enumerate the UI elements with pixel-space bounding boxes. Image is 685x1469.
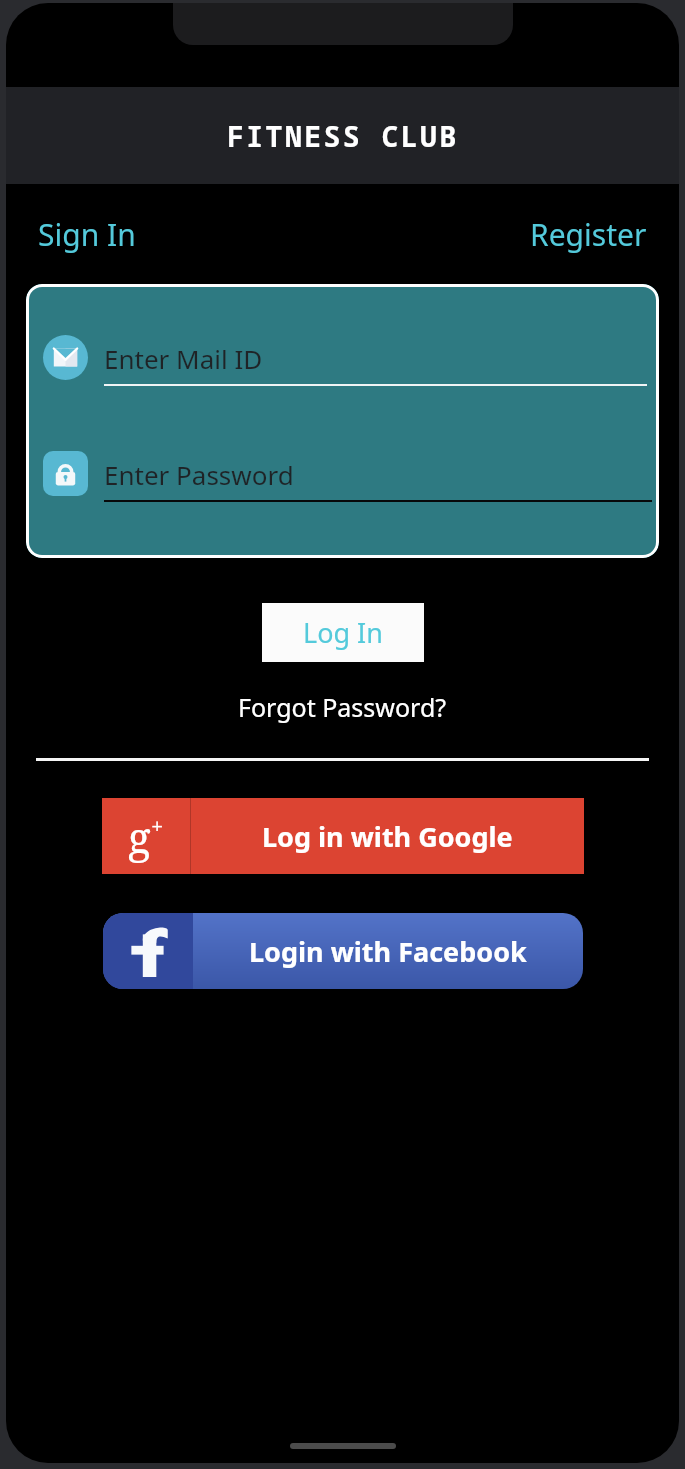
button[interactable]: Login with Facebook xyxy=(103,913,583,989)
button[interactable]: Register xyxy=(526,208,651,261)
staticText: Register xyxy=(530,214,647,255)
staticText: Log In xyxy=(303,614,383,651)
button[interactable]: g xyxy=(102,798,584,874)
staticText: Enter Mail ID xyxy=(104,341,263,376)
staticText: + xyxy=(151,810,164,840)
staticText: FITNESS CLUB xyxy=(227,117,459,155)
staticText: Login with Facebook xyxy=(249,933,527,970)
button[interactable]: Log In xyxy=(262,603,424,662)
staticText: Log in with Google xyxy=(262,818,513,855)
staticText: Sign In xyxy=(38,214,136,255)
other: Password xyxy=(43,451,88,496)
staticText: Forgot Password? xyxy=(238,690,447,724)
button[interactable]: Forgot Password? xyxy=(228,682,457,732)
staticText: Enter Password xyxy=(104,457,294,492)
other: Email xyxy=(43,335,88,380)
button[interactable]: Enter Mail ID xyxy=(104,330,650,386)
button[interactable]: Enter Password xyxy=(104,446,655,502)
button[interactable]: Sign In xyxy=(34,208,140,261)
staticText: g xyxy=(128,808,151,865)
